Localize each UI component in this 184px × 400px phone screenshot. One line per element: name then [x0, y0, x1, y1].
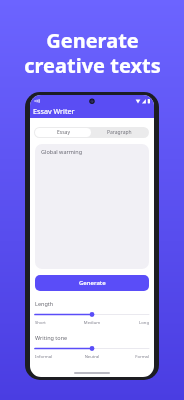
staticText: Medium [73, 320, 111, 326]
staticText: Short [35, 320, 73, 326]
staticText: Formal [111, 354, 149, 360]
staticText: Neutral [73, 354, 111, 360]
button[interactable]: Writing tone [35, 345, 149, 352]
staticText: Writing tone [35, 334, 68, 341]
button[interactable]: Generate [35, 275, 149, 291]
button[interactable]: Essay [35, 128, 91, 137]
staticText: Essay [57, 129, 70, 136]
button[interactable]: Global warming [35, 144, 149, 269]
staticText: Long [111, 320, 149, 326]
staticText: Generate [79, 279, 106, 287]
staticText: Global warming [41, 148, 83, 155]
staticText: Informal [35, 354, 73, 360]
button[interactable]: Length [35, 311, 149, 318]
button[interactable]: Paragraph [91, 128, 148, 137]
staticText: Paragraph [107, 129, 132, 136]
staticText: Essay Writer [33, 106, 75, 114]
staticText: Generate creative texts [24, 27, 161, 79]
staticText: Length [35, 300, 54, 307]
